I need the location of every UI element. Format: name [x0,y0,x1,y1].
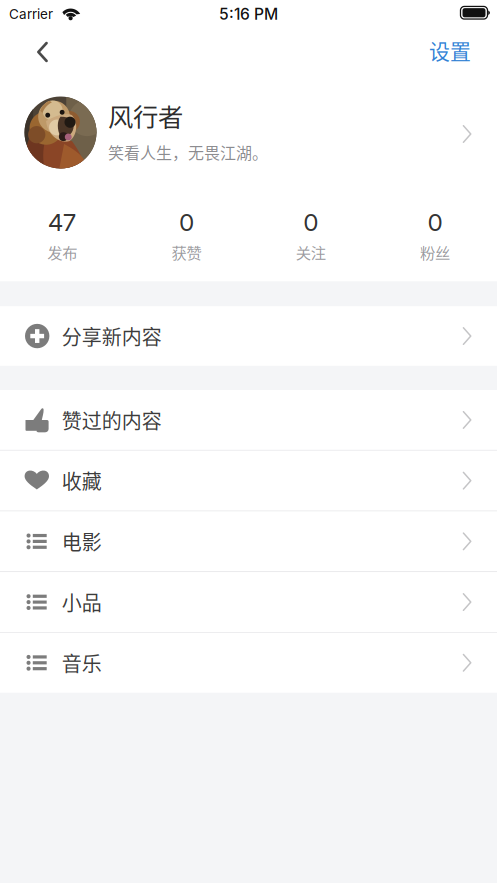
button[interactable]: 0 [248,210,373,261]
button[interactable]: Back [0,28,70,76]
staticText: 获赞 [171,241,201,263]
staticText: 0 [179,207,194,237]
staticText: 47 [48,207,77,237]
button[interactable]: 收藏 [0,451,497,511]
button[interactable]: 0 [124,210,248,261]
button[interactable]: 0 [373,210,497,261]
staticText: 设置 [429,35,471,65]
button[interactable]: 分享新内容 [0,306,497,366]
button[interactable]: 小品 [0,572,497,632]
staticText: 笑看人生，无畏江湖。 [108,140,268,164]
staticText: 电影 [62,527,102,556]
button[interactable]: 赞过的内容 [0,390,497,450]
staticText: 关注 [296,241,326,263]
button[interactable]: 47 [0,210,124,261]
button[interactable]: 风行者 [0,76,497,192]
staticText: 收藏 [62,466,102,495]
staticText: Carrier [9,6,53,22]
staticText: 风行者 [108,97,183,134]
button[interactable]: 设置 [409,28,497,76]
button[interactable]: 电影 [0,511,497,571]
staticText: 0 [303,207,318,237]
staticText: 音乐 [62,648,102,677]
staticText: 粉丝 [420,241,450,263]
staticText: 分享新内容 [62,322,162,351]
staticText: 小品 [62,588,102,617]
staticText: 发布 [47,241,77,263]
staticText: 5:16 PM [219,5,278,23]
staticText: 赞过的内容 [62,405,162,434]
button[interactable]: 音乐 [0,633,497,693]
staticText: 0 [427,207,442,237]
